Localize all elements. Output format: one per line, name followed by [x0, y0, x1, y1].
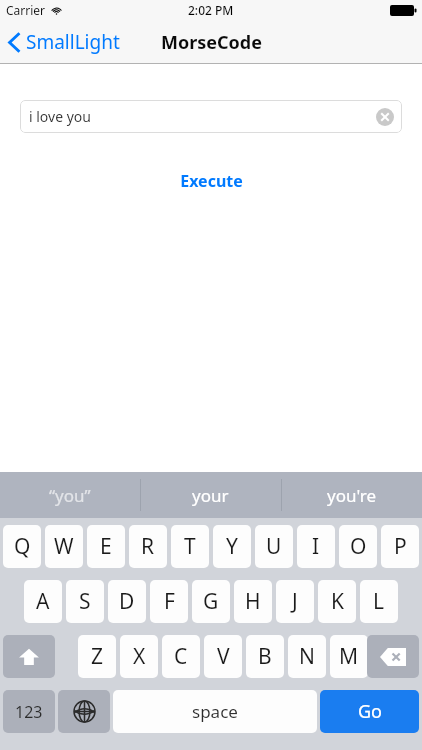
button[interactable]: K — [318, 580, 356, 623]
button[interactable]: S — [66, 580, 104, 623]
staticText: Execute — [180, 170, 243, 192]
button[interactable]: Y — [213, 525, 251, 568]
button[interactable]: X — [120, 635, 158, 678]
staticText: Go — [358, 699, 382, 724]
button[interactable]: Switch keyboard — [58, 690, 110, 733]
button[interactable]: SmallLight — [8, 29, 126, 55]
staticText: E — [100, 532, 112, 561]
staticText: B — [258, 642, 272, 671]
button[interactable]: M — [330, 635, 368, 678]
button[interactable]: space — [113, 690, 317, 733]
button[interactable]: D — [108, 580, 146, 623]
button[interactable]: P — [381, 525, 419, 568]
button[interactable]: N — [288, 635, 326, 678]
button[interactable]: H — [234, 580, 272, 623]
button[interactable]: A — [24, 580, 62, 623]
staticText: SmallLight — [26, 29, 120, 55]
button[interactable]: 123 — [3, 690, 55, 733]
staticText: R — [141, 532, 155, 561]
staticText: S — [79, 587, 91, 616]
staticText: W — [54, 532, 74, 561]
staticText: L — [373, 587, 385, 616]
button[interactable]: F — [150, 580, 188, 623]
staticText: A — [36, 587, 50, 616]
button[interactable]: G — [192, 580, 230, 623]
staticText: “you” — [49, 484, 91, 507]
staticText: I — [312, 532, 320, 561]
button[interactable]: T — [171, 525, 209, 568]
staticText: T — [184, 532, 196, 561]
button[interactable]: Execute — [166, 165, 257, 197]
button[interactable]: L — [360, 580, 398, 623]
button[interactable]: your — [140, 472, 281, 518]
staticText: C — [174, 642, 188, 671]
button[interactable]: E — [87, 525, 125, 568]
button[interactable]: B — [246, 635, 284, 678]
staticText: 2:02 PM — [188, 2, 234, 18]
button[interactable]: O — [339, 525, 377, 568]
staticText: K — [331, 587, 344, 616]
button[interactable]: Clear text — [376, 108, 394, 126]
staticText: M — [339, 642, 359, 671]
staticText: 123 — [15, 701, 43, 723]
button[interactable]: W — [45, 525, 83, 568]
button[interactable]: Shift — [3, 635, 55, 678]
button[interactable]: C — [162, 635, 200, 678]
staticText: X — [133, 642, 146, 671]
button[interactable]: i love you — [20, 100, 402, 133]
staticText: J — [292, 587, 298, 616]
button[interactable]: Go — [320, 690, 419, 733]
button[interactable]: U — [255, 525, 293, 568]
button[interactable]: I — [297, 525, 335, 568]
button[interactable]: Q — [3, 525, 41, 568]
button[interactable]: J — [276, 580, 314, 623]
staticText: U — [266, 532, 282, 561]
staticText: G — [203, 587, 219, 616]
button[interactable]: V — [204, 635, 242, 678]
staticText: Y — [226, 532, 238, 561]
staticText: F — [164, 587, 175, 616]
staticText: D — [119, 587, 135, 616]
staticText: i love you — [29, 107, 91, 126]
staticText: N — [299, 642, 315, 671]
staticText: Carrier — [6, 2, 46, 18]
staticText: Q — [14, 532, 31, 561]
staticText: space — [192, 700, 238, 723]
staticText: V — [217, 642, 230, 671]
button[interactable]: Z — [78, 635, 116, 678]
button[interactable]: “you” — [0, 472, 140, 518]
staticText: H — [245, 587, 261, 616]
button[interactable]: R — [129, 525, 167, 568]
staticText: MorseCode — [161, 30, 262, 55]
staticText: you're — [327, 484, 377, 507]
staticText: your — [192, 484, 229, 507]
button[interactable]: you're — [281, 472, 422, 518]
button[interactable]: Backspace — [367, 635, 419, 678]
staticText: O — [350, 532, 367, 561]
staticText: P — [394, 532, 407, 561]
staticText: Z — [91, 642, 104, 671]
